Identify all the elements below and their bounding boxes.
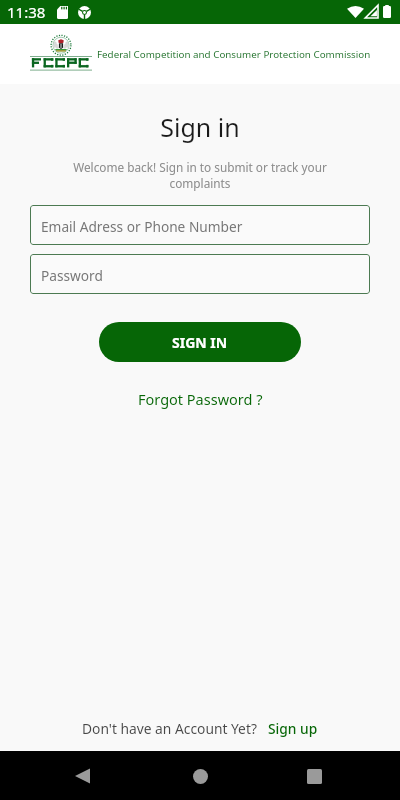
button[interactable]: Home — [176, 752, 224, 800]
staticText: Don't have an Account Yet? — [82, 719, 257, 738]
button[interactable]: Forgot Password ? — [128, 386, 273, 412]
button[interactable]: Password — [30, 254, 370, 294]
staticText: Password — [41, 266, 103, 285]
staticText: Email Adress or Phone Number — [41, 217, 243, 236]
staticText: Forgot Password ? — [138, 389, 263, 409]
staticText: Sign in — [0, 110, 400, 144]
button[interactable]: Back — [64, 752, 112, 800]
button[interactable]: Recent apps — [288, 752, 336, 800]
staticText: 11:38 — [7, 2, 46, 22]
button[interactable]: Email Adress or Phone Number — [30, 205, 370, 245]
staticText: Sign up — [268, 719, 318, 738]
staticText: SIGN IN — [172, 333, 228, 352]
staticText: Welcome back! Sign in to submit or track… — [0, 159, 400, 191]
staticText: Federal Competition and Consumer Protect… — [97, 48, 371, 61]
button[interactable]: SIGN IN — [99, 322, 301, 362]
button[interactable]: Sign up — [268, 719, 318, 738]
